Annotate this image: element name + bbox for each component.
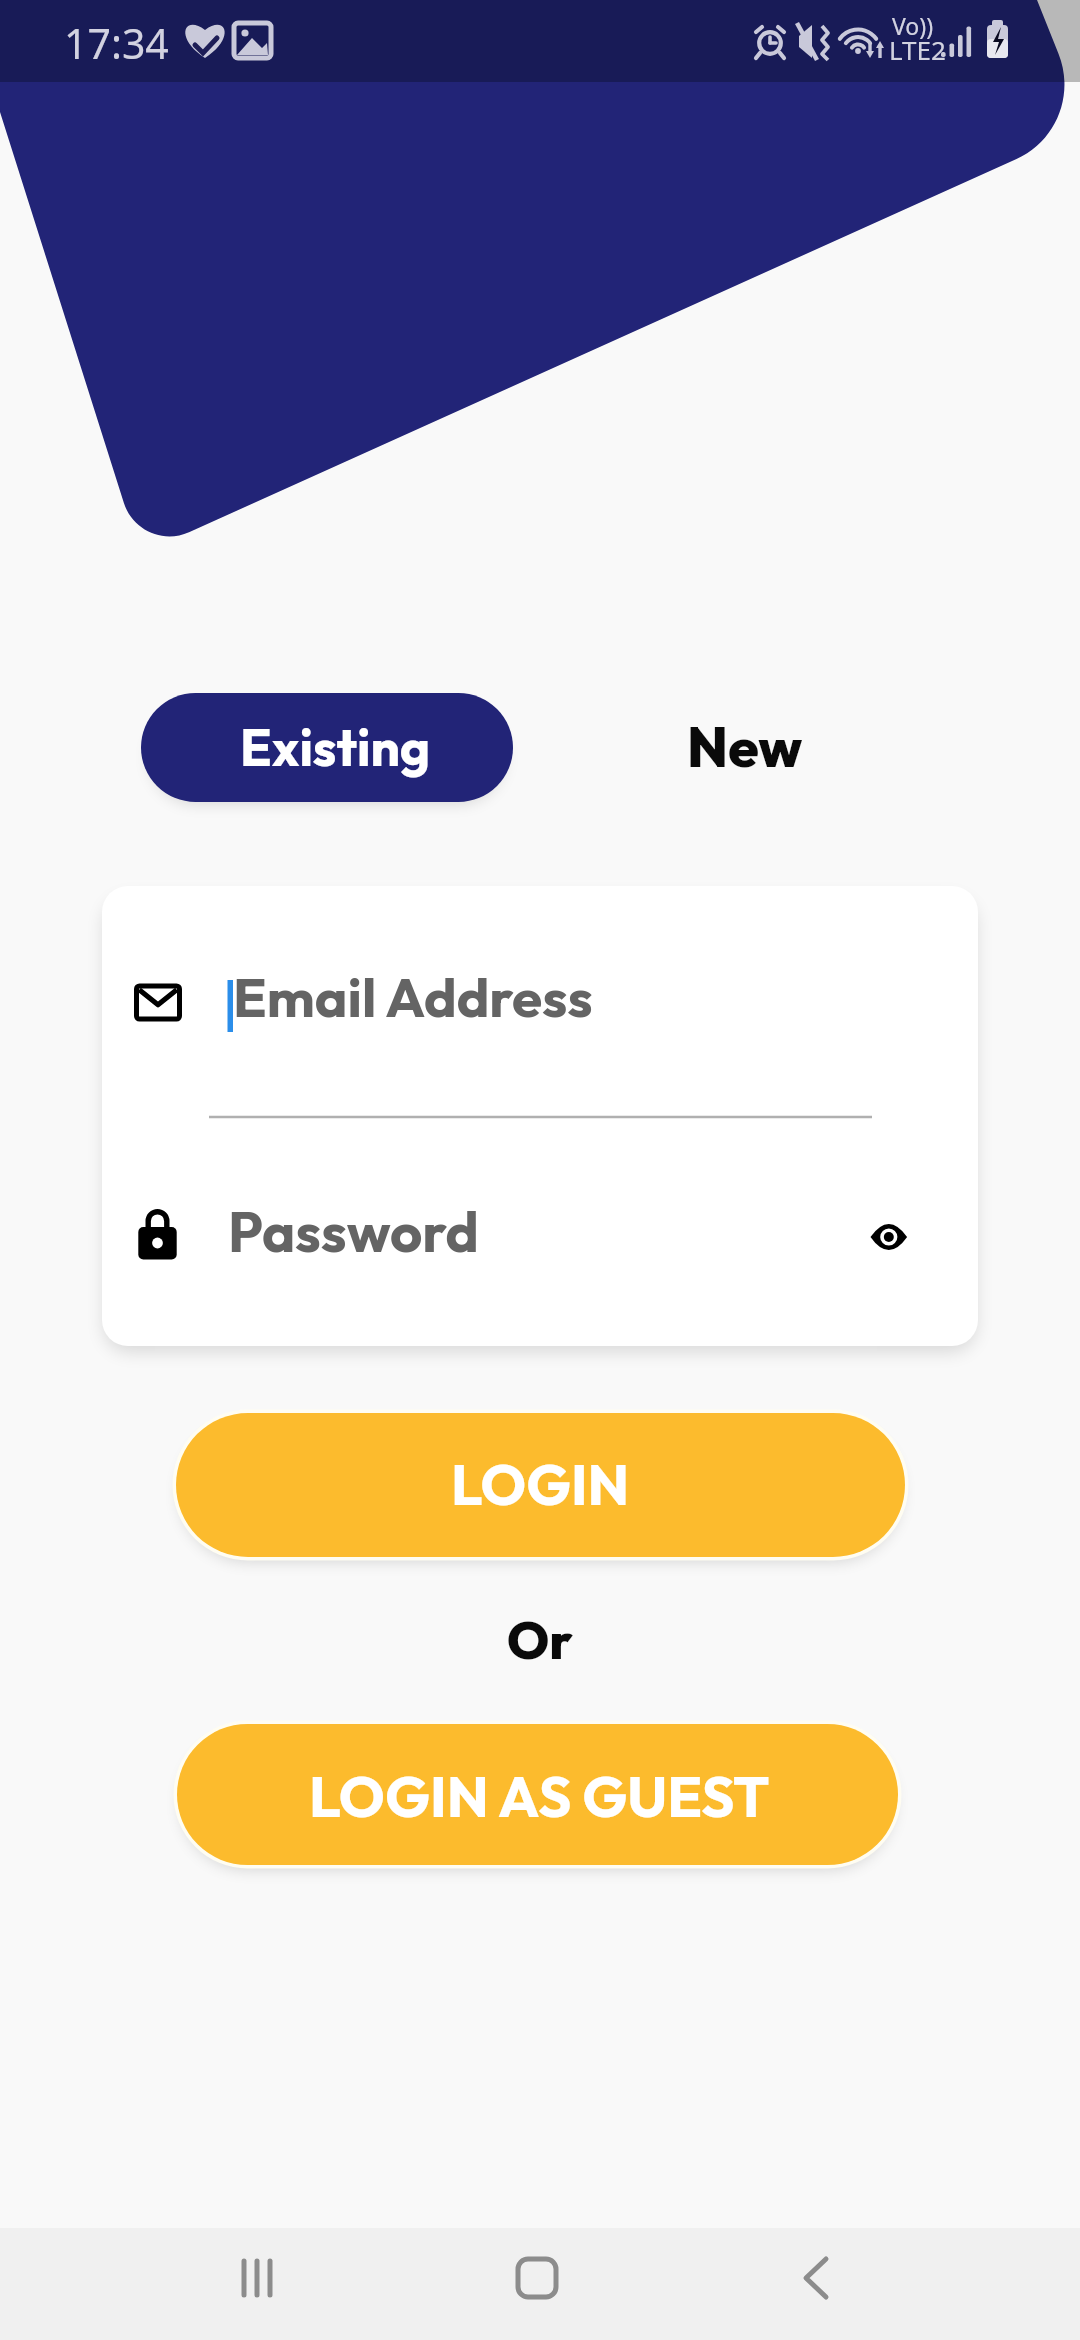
staticText: Vo)) xyxy=(892,10,934,41)
button[interactable]: Existing xyxy=(141,693,513,802)
button[interactable]: LOGIN AS GUEST xyxy=(177,1724,898,1865)
staticText: Password xyxy=(228,1196,479,1267)
staticText: Existing xyxy=(240,714,431,779)
button[interactable]: New xyxy=(620,693,872,802)
staticText: LOGIN xyxy=(451,1448,630,1519)
staticText: LOGIN AS GUEST xyxy=(309,1760,770,1832)
button[interactable]: LOGIN xyxy=(176,1413,905,1557)
staticText: LTE2 xyxy=(889,32,946,67)
staticText: Or xyxy=(507,1607,573,1673)
button[interactable]: Email Address xyxy=(102,936,978,1066)
staticText: New xyxy=(687,712,803,781)
button[interactable]: Show password xyxy=(839,1187,939,1287)
button[interactable]: Password xyxy=(102,1171,978,1301)
staticText: 17:34 xyxy=(64,15,169,71)
staticText: Email Address xyxy=(233,962,593,1031)
